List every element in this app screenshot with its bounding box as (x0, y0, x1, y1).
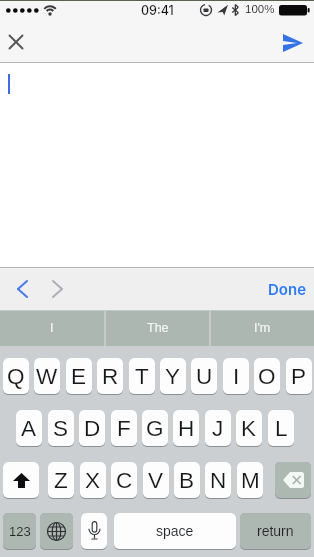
button[interactable]: F (111, 410, 137, 446)
staticText: I'm (254, 321, 271, 335)
staticText: N (210, 468, 227, 493)
button[interactable]: Done (268, 280, 307, 298)
staticText: I (233, 364, 240, 389)
button[interactable]: Z (48, 462, 74, 498)
staticText: X (85, 468, 101, 493)
staticText: return (257, 523, 294, 539)
button[interactable]: V (143, 462, 169, 498)
staticText: P (291, 364, 307, 389)
staticText: T (135, 364, 149, 389)
staticText: The (147, 321, 169, 335)
button[interactable]: U (191, 358, 217, 394)
button[interactable] (40, 513, 73, 549)
button[interactable]: L (268, 410, 294, 446)
staticText: 09:41 (141, 3, 174, 18)
button[interactable] (8, 275, 36, 303)
button[interactable]: B (174, 462, 200, 498)
staticText: I (50, 321, 54, 335)
staticText: E (71, 364, 87, 389)
button[interactable]: G (142, 410, 168, 446)
staticText: A (21, 416, 37, 441)
button[interactable]: E (66, 358, 92, 394)
staticText: H (178, 416, 195, 441)
button[interactable]: J (205, 410, 231, 446)
button[interactable]: 123 (3, 513, 36, 549)
staticText: W (36, 364, 58, 389)
staticText: K (241, 416, 257, 441)
staticText: D (84, 416, 101, 441)
button[interactable]: O (254, 358, 280, 394)
staticText: 123 (9, 524, 31, 539)
button[interactable]: D (79, 410, 105, 446)
staticText: Z (54, 468, 68, 493)
staticText: Y (165, 364, 181, 389)
staticText: L (275, 416, 288, 441)
button[interactable] (2, 28, 30, 56)
button[interactable]: H (173, 410, 199, 446)
button[interactable]: X (80, 462, 106, 498)
button[interactable]: C (111, 462, 137, 498)
staticText: C (116, 468, 133, 493)
staticText: U (196, 364, 213, 389)
button[interactable]: T (129, 358, 155, 394)
staticText: M (241, 468, 260, 493)
staticText: J (212, 416, 224, 441)
button[interactable]: Y (160, 358, 186, 394)
staticText: B (179, 468, 195, 493)
button[interactable]: I (223, 358, 249, 394)
staticText: Q (7, 364, 25, 389)
button[interactable] (279, 29, 307, 57)
button[interactable] (81, 513, 107, 549)
button[interactable] (275, 462, 311, 498)
button[interactable]: Q (3, 358, 29, 394)
button[interactable]: W (34, 358, 60, 394)
staticText: G (146, 416, 164, 441)
button[interactable]: R (97, 358, 123, 394)
button[interactable]: space (114, 513, 236, 549)
button[interactable]: return (240, 513, 311, 549)
staticText: O (258, 364, 276, 389)
staticText: R (102, 364, 119, 389)
button[interactable]: P (286, 358, 312, 394)
staticText: Done (268, 280, 307, 298)
staticText: 100% (245, 3, 275, 16)
button[interactable]: I (0, 310, 104, 346)
button[interactable] (43, 275, 71, 303)
button[interactable]: K (236, 410, 262, 446)
button[interactable]: S (48, 410, 74, 446)
staticText: S (53, 416, 69, 441)
button[interactable]: N (205, 462, 231, 498)
button[interactable]: M (237, 462, 263, 498)
staticText: V (148, 468, 164, 493)
staticText: space (156, 523, 194, 539)
button[interactable]: I'm (211, 310, 314, 346)
button[interactable]: A (16, 410, 42, 446)
button[interactable]: The (106, 310, 209, 346)
staticText: F (117, 416, 131, 441)
button[interactable] (3, 462, 39, 498)
